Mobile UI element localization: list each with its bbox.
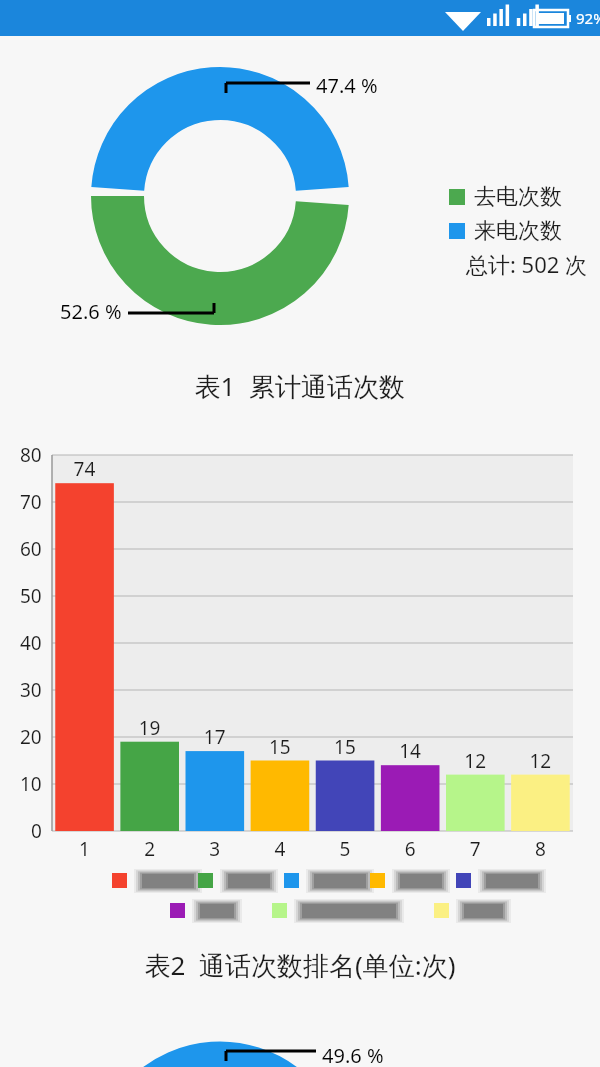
button[interactable]: Call statistics charts: [0, 0, 600, 1067]
